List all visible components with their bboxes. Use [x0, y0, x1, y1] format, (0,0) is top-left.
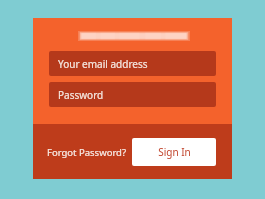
- button[interactable]: Password: [49, 82, 216, 107]
- button[interactable]: Your email address: [49, 51, 216, 76]
- staticText: Sign In: [158, 145, 191, 159]
- staticText: Password: [58, 88, 104, 102]
- button[interactable]: Forgot Password?: [47, 144, 127, 160]
- button[interactable]: Sign In: [132, 138, 216, 166]
- staticText: Your email address: [58, 57, 148, 71]
- staticText: Forgot Password?: [47, 146, 127, 159]
